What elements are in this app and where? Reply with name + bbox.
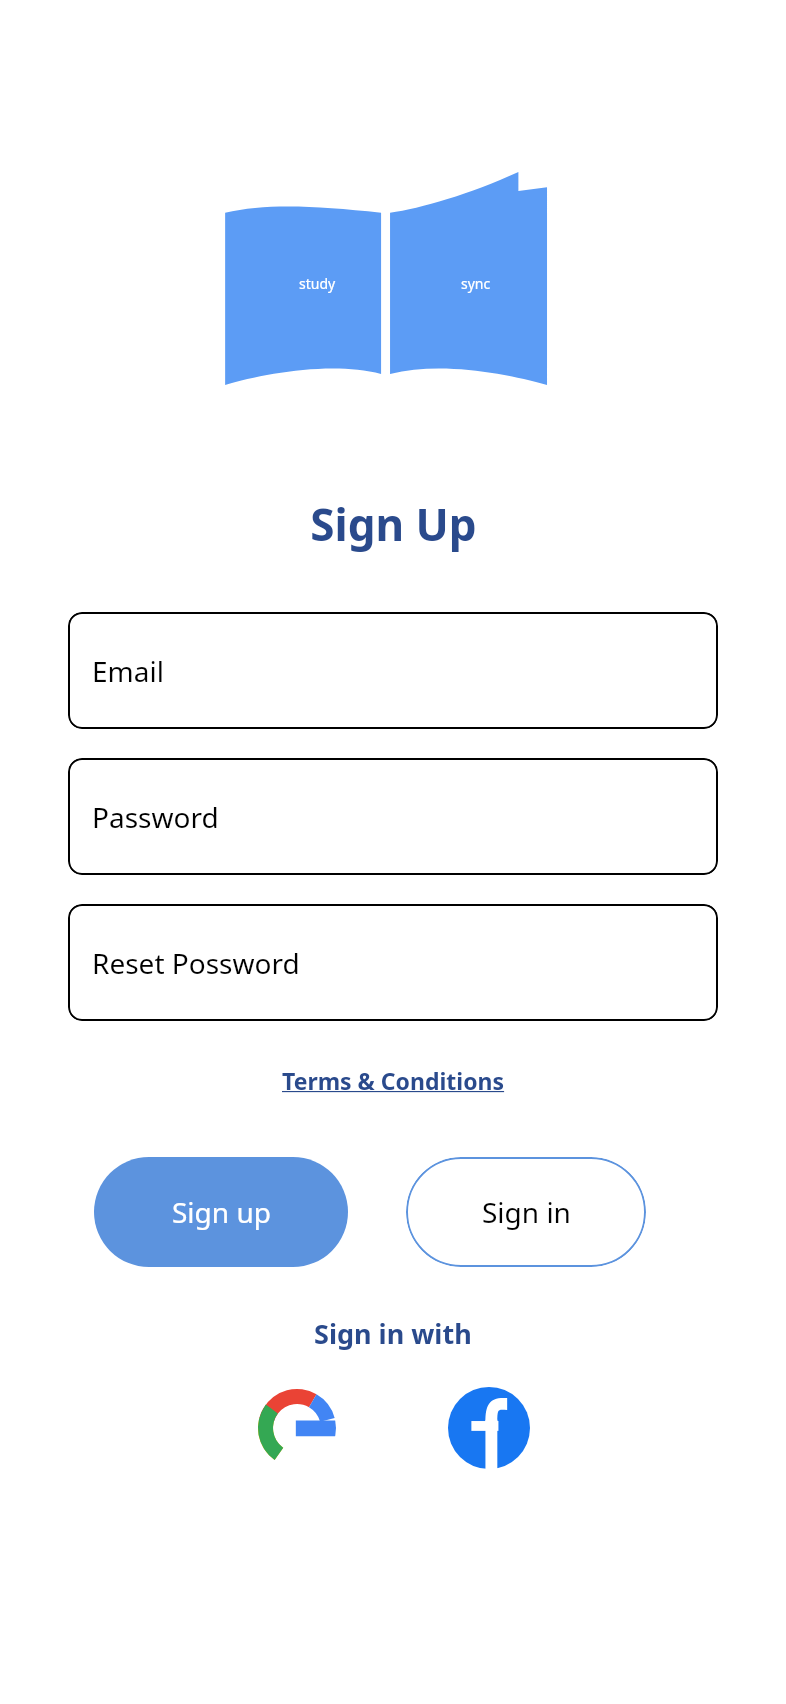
staticText: Password (92, 798, 219, 836)
staticText: Sign up (172, 1193, 271, 1231)
button[interactable]: Password (68, 758, 718, 875)
button[interactable]: Sign in (406, 1157, 646, 1267)
staticText: study (299, 274, 336, 293)
staticText: Sign in with (314, 1315, 472, 1352)
button[interactable]: Email (68, 612, 718, 729)
staticText: Email (92, 652, 164, 690)
staticText: Sign in (482, 1193, 571, 1231)
staticText: Terms & Conditions (282, 1065, 505, 1096)
button[interactable]: Reset Possword (68, 904, 718, 1021)
button[interactable]: Sign in with Facebook (445, 1384, 533, 1472)
button[interactable]: Sign in with Google (253, 1384, 341, 1472)
staticText: Reset Possword (92, 944, 300, 982)
staticText: sync (461, 274, 491, 293)
button[interactable]: Sign up (94, 1157, 348, 1267)
staticText: Sign Up (310, 494, 477, 554)
button[interactable]: Terms & Conditions (274, 1059, 513, 1102)
